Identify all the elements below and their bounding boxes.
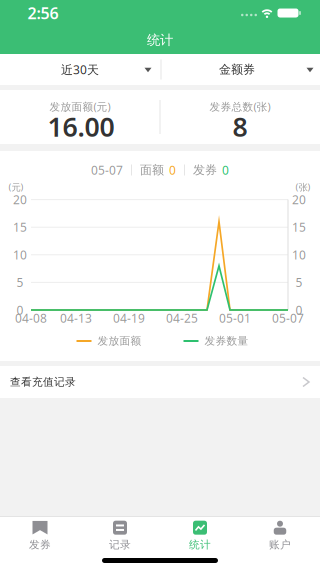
button[interactable]: 金额券 [162, 54, 320, 85]
staticText: 04-08 [15, 310, 47, 326]
button[interactable]: 记录 [80, 519, 160, 553]
staticText: 10 [13, 247, 27, 263]
staticText: 04-19 [113, 310, 145, 326]
staticText: 05-07 [272, 310, 304, 326]
staticText: 05-01 [219, 310, 251, 326]
staticText: 10 [292, 247, 306, 263]
staticText: 发放面额(元) [49, 99, 110, 114]
staticText: 发券 [193, 163, 217, 177]
staticText: 发放面额 [97, 334, 141, 347]
staticText: (张) [295, 181, 310, 193]
staticText: 8 [232, 109, 247, 144]
button[interactable]: 统计 [160, 519, 240, 553]
staticText: 账户 [269, 538, 291, 551]
staticText: 查看充值记录 [10, 375, 76, 388]
button[interactable]: 发券 [0, 519, 80, 553]
staticText: (元) [8, 181, 23, 193]
staticText: 金额券 [219, 62, 255, 77]
staticText: 04-13 [60, 310, 92, 326]
staticText: 20 [13, 192, 27, 207]
staticText: 统计 [147, 32, 173, 48]
staticText: 发券总数(张) [209, 99, 270, 114]
staticText: 5 [16, 274, 23, 290]
staticText: 04-25 [166, 310, 198, 326]
staticText: 2:56 [27, 2, 58, 24]
staticText: 5 [295, 274, 302, 290]
staticText: 记录 [109, 538, 131, 551]
button[interactable]: 查看充值记录 [0, 366, 320, 398]
staticText: 16.00 [47, 109, 114, 144]
staticText: 15 [292, 219, 306, 235]
staticText: 发券 [29, 538, 51, 551]
staticText: 05-07 [91, 162, 123, 178]
staticText: 发券数量 [204, 334, 248, 347]
staticText: 0 [16, 302, 23, 318]
staticText: 15 [13, 219, 27, 235]
staticText: 近30天 [61, 61, 99, 77]
button[interactable]: 账户 [240, 519, 320, 553]
staticText: 0 [222, 162, 229, 178]
staticText: 统计 [189, 538, 211, 551]
staticText: 0 [169, 162, 176, 178]
staticText: 面额 [140, 163, 164, 177]
staticText: 0 [295, 302, 302, 318]
button[interactable]: 近30天 [0, 54, 158, 85]
staticText: 20 [292, 192, 306, 207]
